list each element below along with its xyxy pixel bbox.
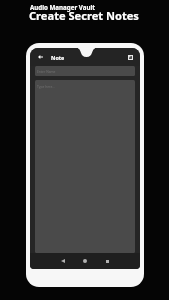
- button[interactable]: Recents: [99, 253, 115, 269]
- staticText: Audio Manager Vault: [30, 3, 95, 11]
- staticText: Create Secret Notes: [29, 8, 139, 23]
- button[interactable]: Enter Name: [35, 66, 135, 76]
- staticText: Type here...: [37, 84, 55, 88]
- staticText: Enter Name: [37, 69, 56, 73]
- button[interactable]: Back: [55, 253, 71, 269]
- button[interactable]: Back: [34, 48, 46, 66]
- staticText: Note: [51, 54, 65, 61]
- button[interactable]: Save: [124, 48, 136, 66]
- button[interactable]: Home: [77, 253, 93, 269]
